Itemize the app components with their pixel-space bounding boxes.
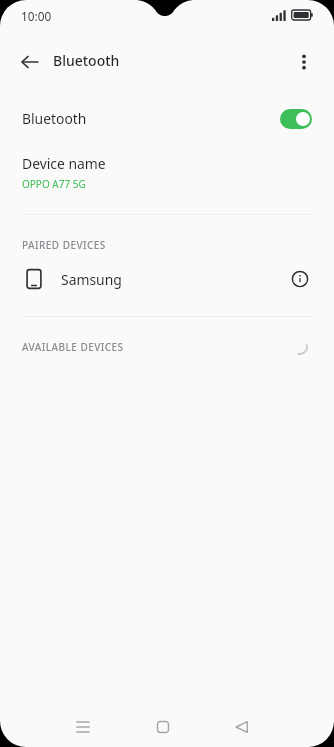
button[interactable]: Home	[140, 706, 186, 747]
staticText: Samsung	[61, 270, 122, 289]
staticText: Device name	[22, 154, 106, 173]
button[interactable]: Samsung	[0, 256, 334, 302]
button[interactable]: More options	[287, 45, 321, 79]
button[interactable]: Device name	[0, 147, 334, 201]
staticText: Bluetooth	[22, 109, 87, 128]
staticText: Bluetooth	[53, 51, 120, 70]
button[interactable]: Bluetooth	[0, 97, 334, 140]
button[interactable]: Recents	[60, 706, 106, 747]
button[interactable]: Device settings	[288, 267, 312, 291]
button[interactable]: Back	[13, 45, 47, 79]
staticText: PAIRED DEVICES	[22, 238, 106, 252]
staticText: OPPO A77 5G	[22, 177, 86, 191]
staticText: AVAILABLE DEVICES	[22, 340, 124, 354]
staticText: 10:00	[21, 8, 52, 24]
button[interactable]: Back	[219, 706, 265, 747]
